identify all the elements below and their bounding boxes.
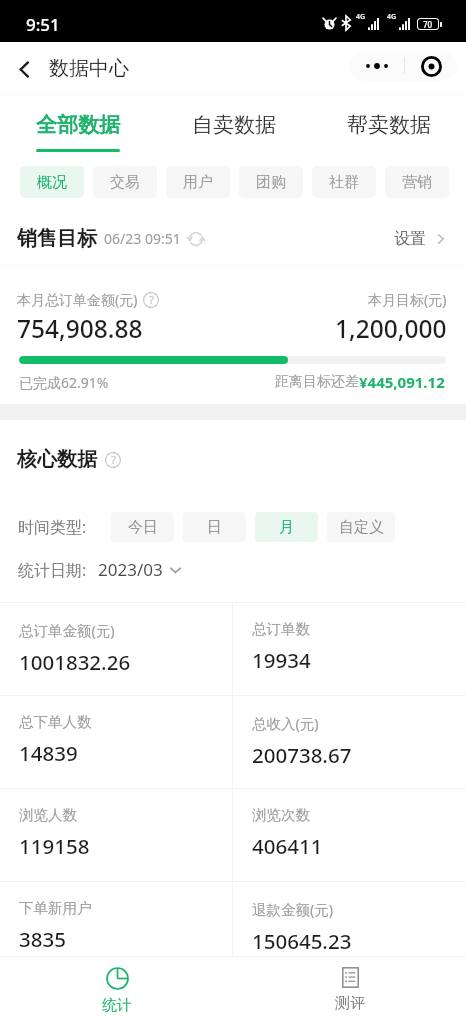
staticText: 754,908.88 [17,312,143,345]
button[interactable]: 全部数据 [0,95,156,158]
staticText: 核心数据 [17,447,97,472]
staticText: 统计日期: [18,559,87,581]
staticText: 概况 [37,173,67,192]
staticText: 数据中心 [49,56,129,81]
button[interactable]: 营销 [385,166,449,198]
staticText: 月 [279,518,294,537]
staticText: 团购 [256,173,286,192]
staticText: 200738.67 [252,741,352,769]
staticText: 全部数据 [36,112,120,138]
staticText: 19934 [252,646,311,674]
staticText: 自卖数据 [192,112,276,138]
staticText: 70 [423,19,433,29]
staticText: 4G [356,12,366,22]
staticText: 设置 [394,229,426,249]
staticText: 日 [207,518,222,537]
staticText: 销售目标 [17,226,97,251]
button[interactable]: 社群 [312,166,376,198]
staticText: 今日 [128,518,158,537]
button[interactable]: Back [4,49,44,89]
button[interactable]: 用户 [166,166,230,198]
staticText: 1001832.26 [19,648,131,676]
staticText: 自定义 [339,518,384,537]
staticText: 营销 [402,173,432,192]
staticText: 退款金额(元) [252,899,334,919]
staticText: ? [111,452,116,467]
button[interactable]: 日 [183,512,246,542]
staticText: 119158 [19,832,90,860]
staticText: 14839 [19,739,78,767]
staticText: 总下单人数 [19,713,92,731]
staticText: 总订单数 [252,620,310,638]
staticText: 1,200,000 [335,312,447,345]
button[interactable]: 今日 [111,512,174,542]
button[interactable]: 自卖数据 [156,95,311,158]
staticText: 用户 [183,173,213,192]
staticText: 下单新用户 [19,899,92,917]
button[interactable]: 月 [255,512,318,542]
button[interactable]: 统计日期: [18,558,182,581]
staticText: 测评 [335,994,365,1013]
staticText: 本月目标(元) [368,290,447,309]
staticText: 浏览次数 [252,806,310,824]
button[interactable]: 交易 [93,166,157,198]
staticText: 9:51 [26,13,60,36]
staticText: ? [149,292,154,307]
staticText: 3835 [19,925,66,953]
staticText: 总订单金额(元) [19,620,115,640]
button[interactable]: 团购 [239,166,303,198]
staticText: 总收入(元) [252,713,319,733]
staticText: 时间类型: [18,516,87,538]
staticText: 距离目标还差 [275,373,359,391]
button[interactable]: More [349,51,404,81]
staticText: 帮卖数据 [347,112,431,138]
staticText: 06/23 09:51 [104,229,181,248]
button[interactable]: 帮卖数据 [311,95,466,158]
button[interactable]: 概况 [20,166,84,198]
button[interactable]: 自定义 [327,512,395,542]
button[interactable]: Close mini program [405,51,457,81]
button[interactable]: 设置 [394,229,448,249]
staticText: 4G [387,12,397,22]
staticText: 已完成62.91% [19,373,109,392]
button[interactable]: 测评 [233,957,466,1024]
staticText: 本月总订单金额(元) [17,290,138,309]
staticText: 2023/03 [98,558,163,581]
staticText: ¥445,091.12 [359,372,445,392]
staticText: 社群 [329,173,359,192]
staticText: 统计 [102,996,132,1015]
button[interactable]: 统计 [0,957,233,1024]
staticText: 浏览人数 [19,806,77,824]
staticText: 交易 [110,173,140,192]
staticText: 150645.23 [252,927,352,955]
staticText: 406411 [252,832,323,860]
